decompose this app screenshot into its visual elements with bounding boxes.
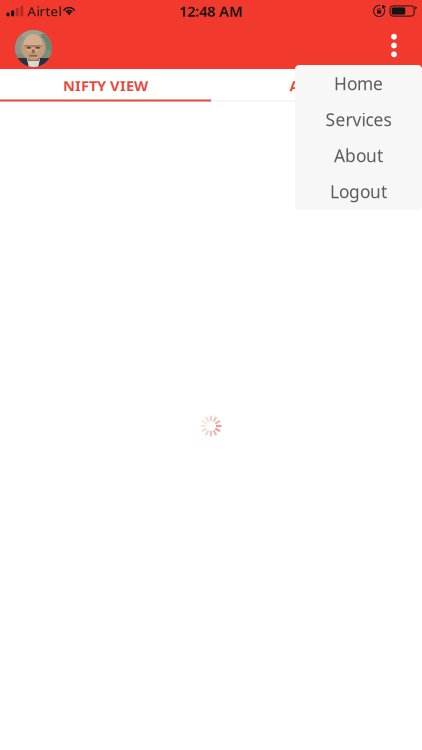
staticText: Home	[334, 72, 383, 95]
staticText: 12:48 AM	[179, 1, 243, 21]
button[interactable]: About	[295, 137, 422, 173]
button[interactable]: ADVICE	[211, 69, 422, 101]
staticText: NIFTY VIEW	[63, 76, 148, 95]
button[interactable]: Logout	[295, 173, 422, 209]
button[interactable]: NIFTY VIEW	[0, 69, 211, 101]
button[interactable]: Profile	[15, 30, 52, 67]
staticText: Airtel	[27, 2, 61, 20]
staticText: About	[334, 144, 383, 167]
staticText: ADVICE	[289, 76, 343, 95]
staticText: Logout	[330, 180, 387, 203]
button[interactable]: Home	[295, 65, 422, 101]
button[interactable]: Menu	[379, 23, 409, 67]
button[interactable]: Services	[295, 101, 422, 137]
staticText: Services	[325, 108, 391, 131]
